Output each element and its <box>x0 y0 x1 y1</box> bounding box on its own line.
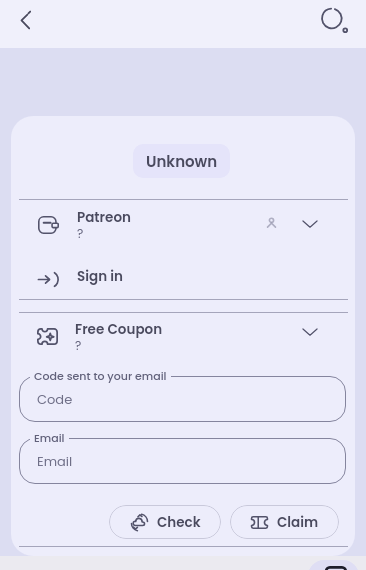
button[interactable]: Claim <box>230 505 339 539</box>
staticText: Check <box>157 513 201 532</box>
button[interactable]: New note <box>308 560 359 570</box>
button[interactable]: Free Coupon <box>11 314 355 360</box>
staticText: Claim <box>277 513 319 532</box>
button[interactable]: Check <box>109 505 221 539</box>
button[interactable]: Unknown <box>133 144 230 178</box>
staticText: Patreon <box>77 208 131 227</box>
button[interactable]: Code <box>19 376 346 422</box>
staticText: Email <box>34 430 65 445</box>
staticText: Unknown <box>146 151 218 172</box>
button[interactable]: Sign in <box>11 261 355 299</box>
staticText: Code <box>37 390 73 408</box>
staticText: Code sent to your email <box>34 368 167 383</box>
staticText: Free Coupon <box>75 320 163 339</box>
button[interactable]: Account <box>317 3 355 41</box>
staticText: ? <box>75 337 82 354</box>
button[interactable]: Patreon <box>11 200 355 246</box>
staticText: Sign in <box>77 267 123 286</box>
staticText: Email <box>37 452 73 470</box>
button[interactable]: Back <box>9 3 43 37</box>
button[interactable]: Email <box>19 438 346 484</box>
staticText: ? <box>77 225 84 242</box>
